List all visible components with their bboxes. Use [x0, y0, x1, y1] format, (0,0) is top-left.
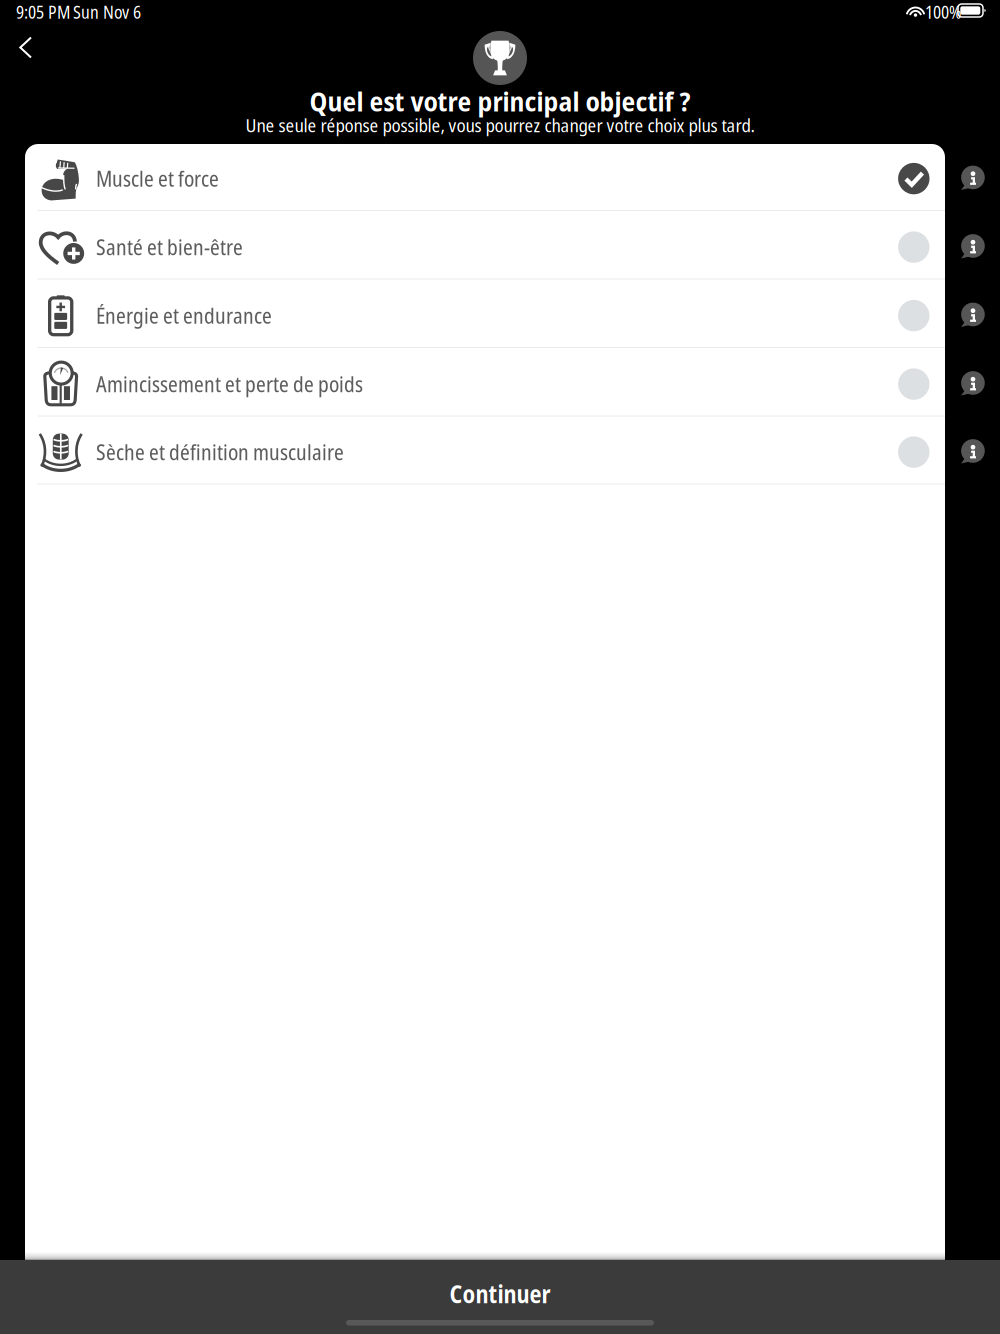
staticText: 9:05 PM	[16, 0, 70, 24]
button[interactable]: Continuer	[0, 1260, 1000, 1334]
button[interactable]: More information	[955, 347, 1000, 415]
staticText: Amincissement et perte de poids	[96, 370, 363, 398]
button[interactable]: More information	[955, 144, 1000, 210]
button[interactable]: More information	[955, 415, 1000, 483]
staticText: Une seule réponse possible, vous pourrez…	[245, 112, 754, 138]
staticText: Santé et bien-être	[96, 233, 243, 261]
button[interactable]: More information	[955, 278, 1000, 347]
button[interactable]: Énergie et endurance	[25, 278, 945, 347]
staticText: 100%	[925, 0, 961, 24]
button[interactable]: More information	[955, 210, 1000, 278]
button[interactable]: Amincissement et perte de poids	[25, 347, 945, 415]
staticText: Muscle et force	[96, 164, 219, 193]
button[interactable]: Muscle et force	[25, 144, 945, 210]
staticText: Continuer	[449, 1278, 550, 1310]
button[interactable]: Santé et bien-être	[25, 210, 945, 278]
staticText: Sèche et définition musculaire	[96, 438, 344, 466]
button[interactable]: Sèche et définition musculaire	[25, 415, 945, 483]
staticText: Quel est votre principal objectif ?	[309, 82, 690, 120]
button[interactable]: Back	[0, 28, 52, 66]
staticText: Énergie et endurance	[96, 301, 272, 330]
staticText: Sun Nov 6	[73, 0, 141, 24]
